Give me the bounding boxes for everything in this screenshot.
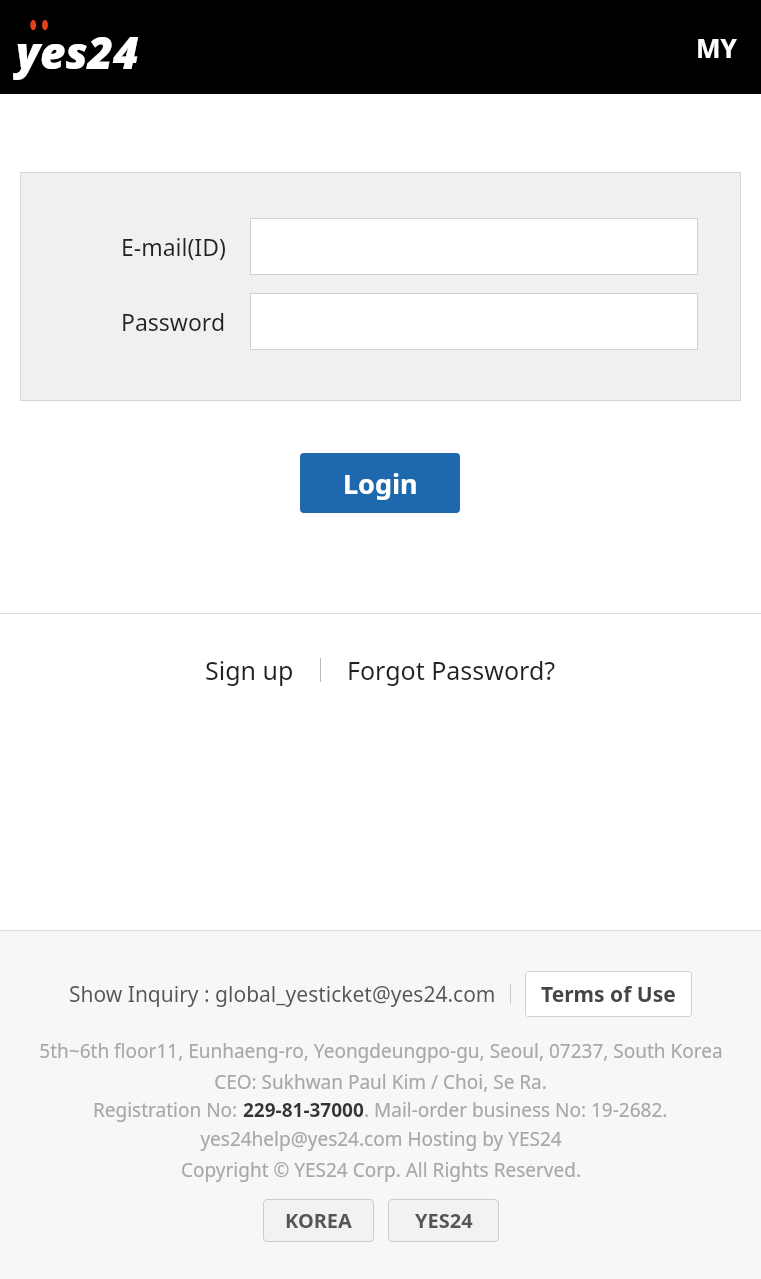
staticText: YES24 (415, 1207, 473, 1234)
staticText: Show Inquiry : global_yesticket@yes24.co… (69, 980, 496, 1009)
button[interactable]: KOREA (263, 1199, 374, 1242)
staticText: MY (696, 30, 737, 65)
button[interactable]: MY (690, 24, 743, 71)
button[interactable]: YES24 home (16, 17, 184, 77)
staticText: yes24help@yes24.com Hosting by YES24 (200, 1126, 562, 1152)
button[interactable]: YES24 (388, 1199, 499, 1242)
staticText: KOREA (285, 1207, 352, 1234)
staticText: Terms of Use (541, 980, 676, 1009)
staticText: 5th~6th floor11, Eunhaeng-ro, Yeongdeung… (39, 1038, 723, 1064)
button[interactable]: Forgot Password? (341, 645, 562, 695)
staticText: Login (343, 465, 418, 502)
staticText: CEO: Sukhwan Paul Kim / Choi, Se Ra. (214, 1069, 547, 1095)
staticText: Password (121, 306, 226, 337)
button[interactable]: Password (250, 293, 698, 350)
staticText: Forgot Password? (347, 653, 556, 687)
button[interactable]: Terms of Use (525, 971, 692, 1017)
staticText: Sign up (205, 653, 294, 687)
button[interactable]: E-mail(ID) (250, 218, 698, 275)
staticText: 229-81-37000 (243, 1097, 364, 1123)
button[interactable]: Sign up (199, 645, 300, 695)
staticText: Registration No: (93, 1097, 243, 1123)
button[interactable]: Login (300, 453, 460, 513)
staticText: . Mail-order business No: 19-2682. (364, 1097, 668, 1123)
staticText: yes24 (16, 22, 139, 82)
staticText: E-mail(ID) (121, 231, 226, 262)
staticText: Copyright © YES24 Corp. All Rights Reser… (181, 1157, 581, 1183)
